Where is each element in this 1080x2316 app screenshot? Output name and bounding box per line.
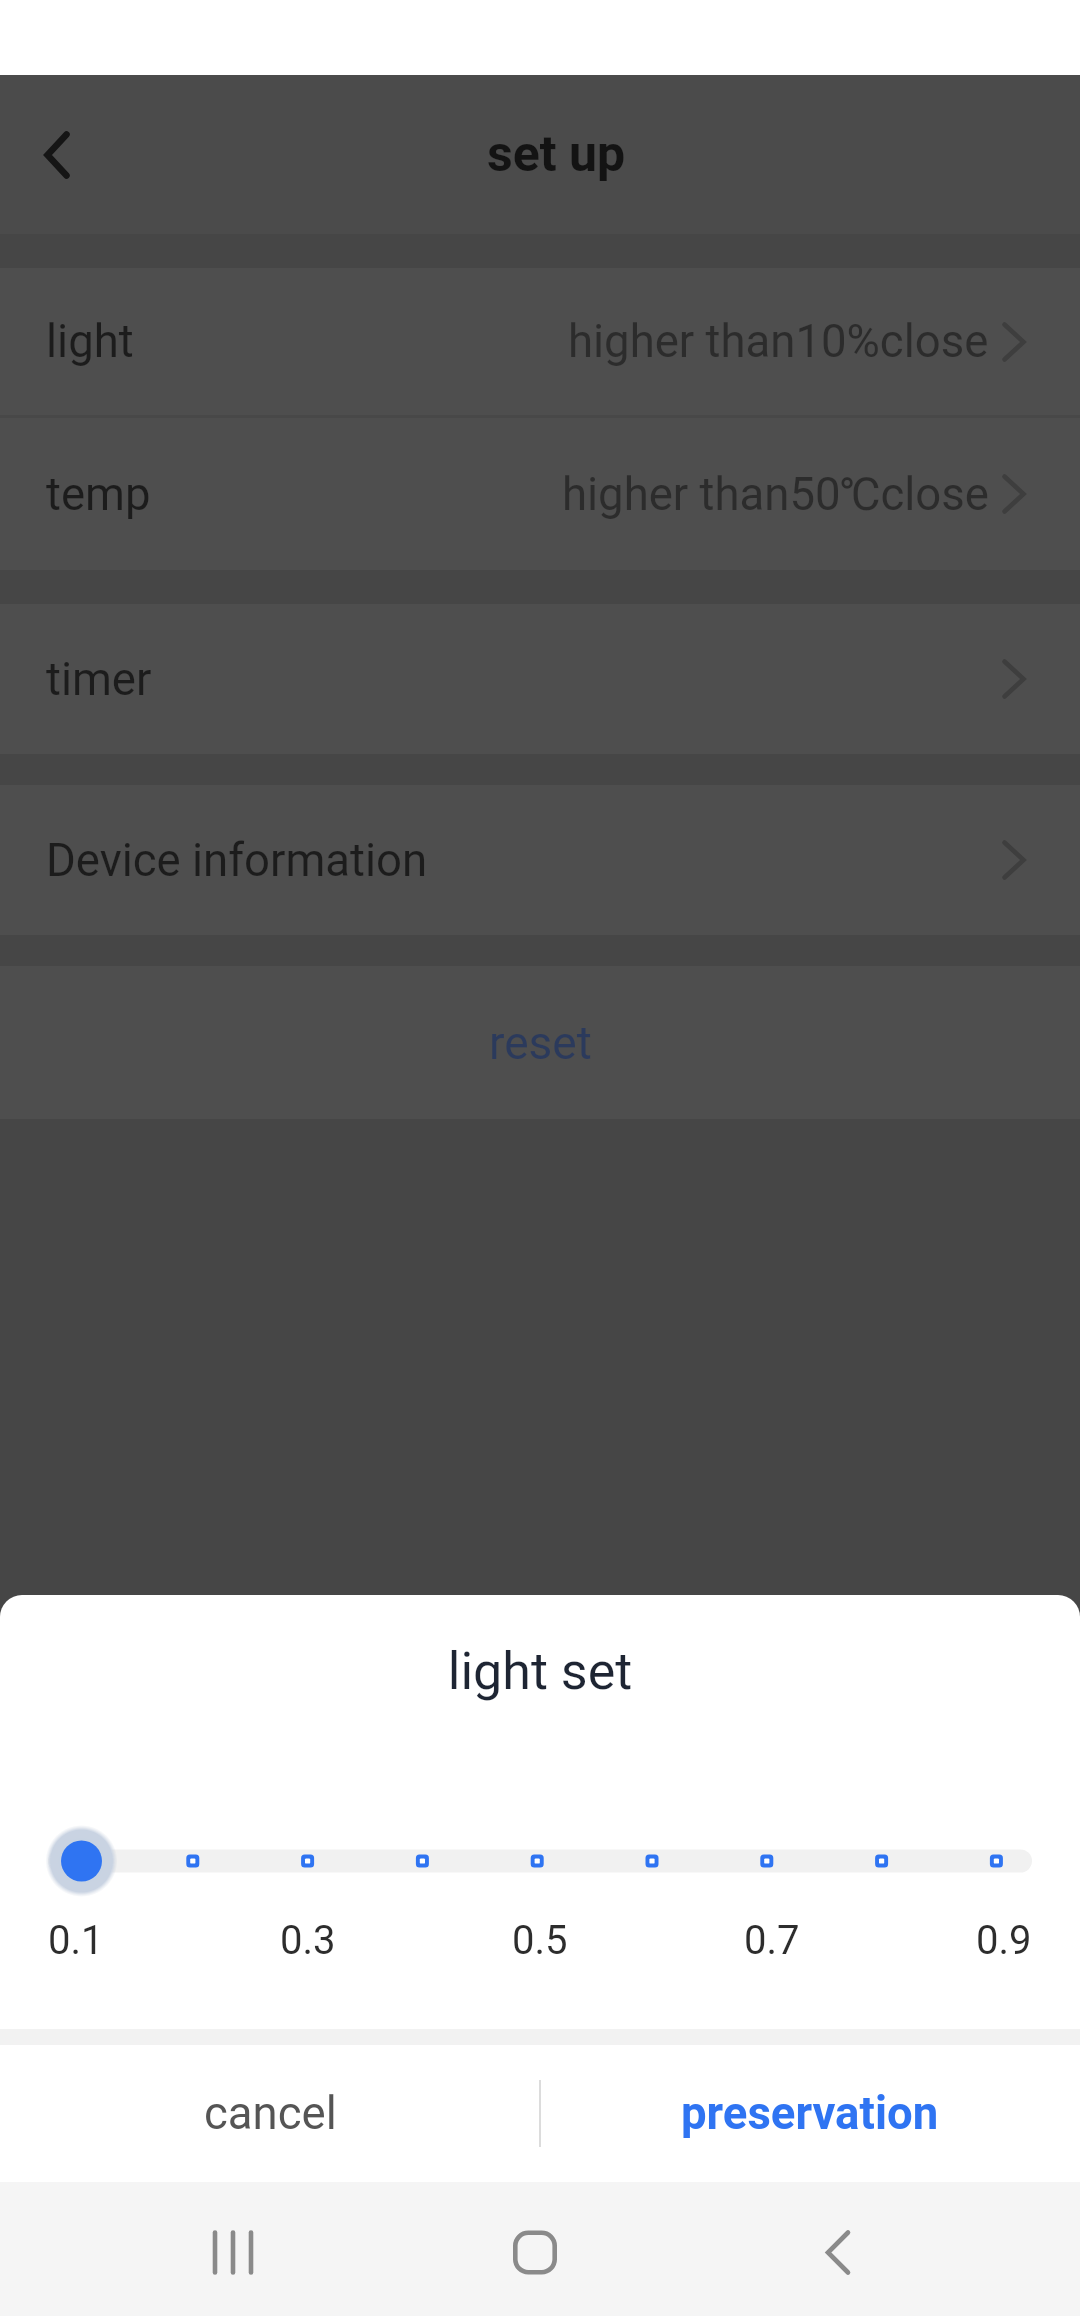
button[interactable]: Recent apps — [0, 2182, 360, 2316]
staticText: higher than10%close — [568, 315, 989, 368]
button[interactable]: cancel — [0, 2045, 540, 2182]
staticText: light set — [0, 1641, 1080, 1702]
staticText: reset — [489, 1016, 592, 1070]
button[interactable]: Back — [0, 75, 114, 234]
button[interactable]: Back — [720, 2182, 1080, 2316]
staticText: Device information — [46, 834, 428, 887]
staticText: set up — [487, 125, 626, 184]
button[interactable]: timer — [0, 604, 1080, 754]
button[interactable]: temp — [0, 418, 1080, 570]
staticText: timer — [46, 653, 152, 706]
button[interactable]: Device information — [0, 785, 1080, 935]
staticText: temp — [46, 468, 151, 521]
staticText: 0.1 — [48, 1917, 104, 1964]
staticText: 0.5 — [512, 1917, 568, 1964]
button[interactable]: preservation — [540, 2045, 1080, 2182]
staticText: 0.3 — [280, 1917, 336, 1964]
staticText: 0.9 — [976, 1917, 1032, 1964]
staticText: higher than50℃close — [562, 468, 989, 521]
staticText: 0.7 — [744, 1917, 800, 1964]
staticText: preservation — [681, 2087, 939, 2140]
button[interactable] — [0, 1826, 1080, 1896]
staticText: cancel — [204, 2087, 337, 2140]
button[interactable]: Home — [360, 2182, 720, 2316]
button[interactable]: light — [0, 268, 1080, 415]
staticText: light — [46, 315, 134, 368]
